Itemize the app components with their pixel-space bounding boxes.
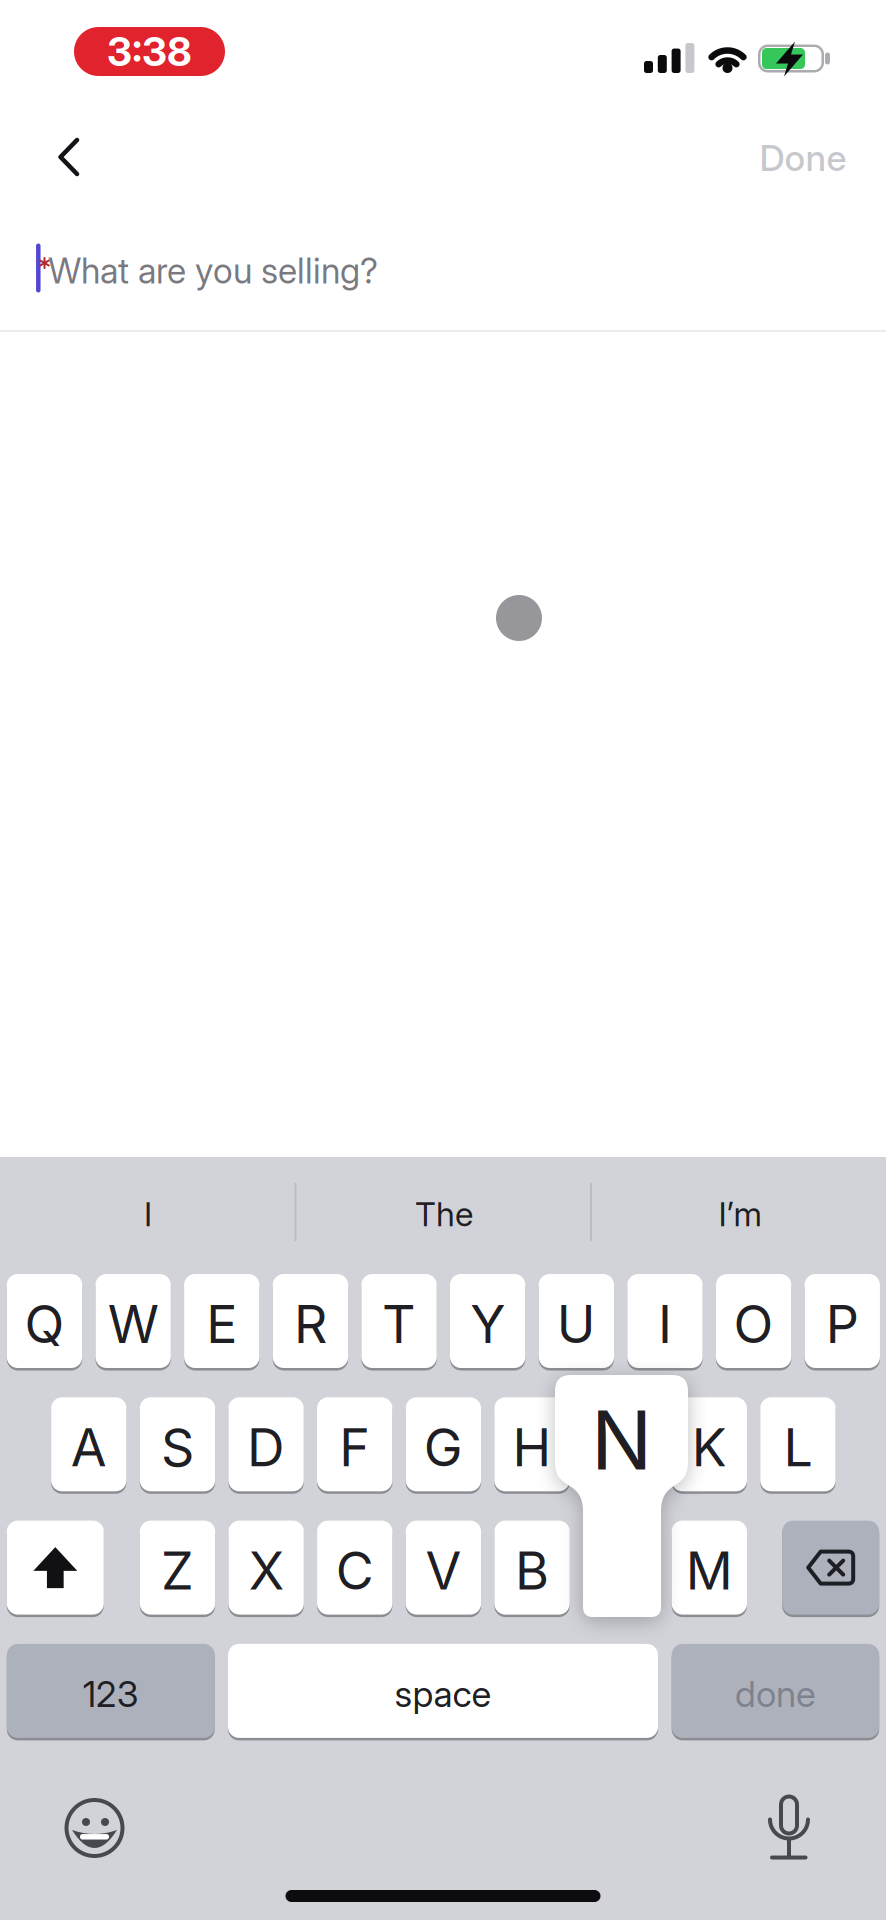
staticText: W: [108, 1292, 159, 1355]
staticText: T: [382, 1292, 416, 1355]
staticText: I’m: [718, 1194, 761, 1234]
button[interactable]: F: [317, 1396, 392, 1493]
button[interactable]: Dictation: [765, 1793, 812, 1860]
staticText: done: [735, 1672, 816, 1716]
button[interactable]: T: [361, 1272, 437, 1369]
staticText: D: [247, 1416, 285, 1479]
staticText: V: [425, 1539, 461, 1602]
button[interactable]: X: [228, 1519, 304, 1616]
button[interactable]: S: [140, 1396, 215, 1493]
button[interactable]: L: [760, 1396, 836, 1493]
button[interactable]: B: [494, 1519, 570, 1616]
staticText: Q: [24, 1292, 64, 1355]
button[interactable]: done: [672, 1642, 879, 1739]
button[interactable]: G: [406, 1396, 481, 1493]
button[interactable]: space: [228, 1642, 658, 1739]
staticText: Z: [161, 1539, 194, 1602]
staticText: P: [826, 1292, 859, 1355]
staticText: Done: [759, 136, 846, 180]
button[interactable]: R: [273, 1272, 348, 1369]
button[interactable]: The: [304, 1174, 584, 1254]
button[interactable]: E: [184, 1272, 259, 1369]
button[interactable]: A: [51, 1396, 126, 1493]
staticText: A: [71, 1416, 107, 1479]
button[interactable]: O: [716, 1272, 791, 1369]
staticText: I: [144, 1194, 152, 1234]
button[interactable]: I’m: [600, 1174, 880, 1254]
staticText: The: [415, 1194, 473, 1234]
button[interactable]: Stop screen recording: [74, 27, 225, 76]
button[interactable]: I: [8, 1174, 288, 1254]
button[interactable]: 123: [7, 1642, 215, 1739]
button[interactable]: Shift: [7, 1519, 104, 1616]
button[interactable]: Q: [7, 1272, 82, 1369]
button[interactable]: Emoji: [64, 1798, 124, 1858]
staticText: F: [339, 1416, 370, 1479]
staticText: S: [161, 1416, 194, 1479]
staticText: Y: [470, 1292, 505, 1355]
button[interactable]: K: [672, 1396, 747, 1493]
staticText: H: [512, 1416, 551, 1479]
staticText: L: [783, 1416, 812, 1479]
staticText: N: [591, 1391, 652, 1489]
button[interactable]: M: [672, 1519, 747, 1616]
staticText: M: [686, 1539, 733, 1602]
staticText: space: [394, 1672, 491, 1716]
staticText: I: [658, 1292, 672, 1355]
button[interactable]: Delete: [782, 1519, 879, 1616]
button[interactable]: H: [494, 1396, 570, 1493]
staticText: G: [424, 1416, 463, 1479]
staticText: 123: [83, 1672, 139, 1716]
staticText: What are you selling?: [48, 250, 378, 292]
button[interactable]: Y: [450, 1272, 525, 1369]
button[interactable]: U: [539, 1272, 614, 1369]
staticText: C: [336, 1539, 374, 1602]
staticText: O: [734, 1292, 774, 1355]
button[interactable]: P: [805, 1272, 880, 1369]
button[interactable]: I: [627, 1272, 703, 1369]
staticText: B: [515, 1539, 549, 1602]
button[interactable]: W: [95, 1272, 171, 1369]
button[interactable]: V: [406, 1519, 481, 1616]
staticText: E: [206, 1292, 237, 1355]
staticText: X: [249, 1539, 284, 1602]
staticText: U: [557, 1292, 596, 1355]
button[interactable]: Back: [47, 127, 91, 187]
button[interactable]: C: [317, 1519, 392, 1616]
button[interactable]: D: [228, 1396, 304, 1493]
button[interactable]: Z: [140, 1519, 215, 1616]
staticText: 3:38: [107, 27, 192, 76]
staticText: R: [294, 1292, 327, 1355]
staticText: K: [692, 1416, 727, 1479]
button[interactable]: Done: [759, 130, 846, 186]
